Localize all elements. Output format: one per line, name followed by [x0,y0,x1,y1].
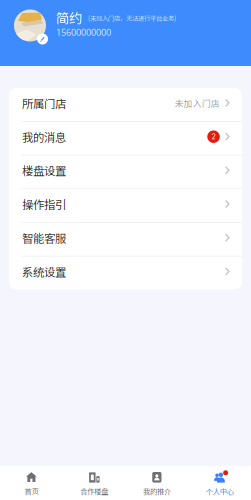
staticText: 未加入门店 [175,97,220,109]
staticText: 首页 [24,486,38,496]
staticText: (未加入门店，无法进行平台业务) [88,13,176,23]
staticText: 智能客服 [22,230,66,246]
staticText: 我的消息 [22,128,66,145]
staticText: 操作指引 [22,196,66,212]
button[interactable]: 楼盘设置 [9,155,242,188]
button[interactable]: 我的消息 [9,122,242,155]
button[interactable]: 操作指引 [9,189,242,222]
button[interactable]: Edit profile photo [13,8,47,43]
staticText: 所属门店 [22,95,66,111]
staticText: 15600000000 [56,26,111,38]
staticText: 2 [211,132,215,141]
button[interactable]: 合作楼盘 [63,472,126,496]
button[interactable]: 系统设置 [9,256,242,289]
staticText: 简约 [56,8,82,27]
button[interactable]: 智能客服 [9,223,242,256]
staticText: 个人中心 [206,486,234,496]
staticText: 合作楼盘 [80,486,108,496]
button[interactable]: 所属门店 [9,88,242,121]
staticText: 楼盘设置 [22,162,66,179]
button[interactable]: 首页 [0,472,63,496]
button[interactable]: 我的推介 [125,472,188,496]
staticText: 我的推介 [143,486,171,496]
staticText: 系统设置 [22,263,66,280]
button[interactable]: 个人中心 [188,472,251,496]
